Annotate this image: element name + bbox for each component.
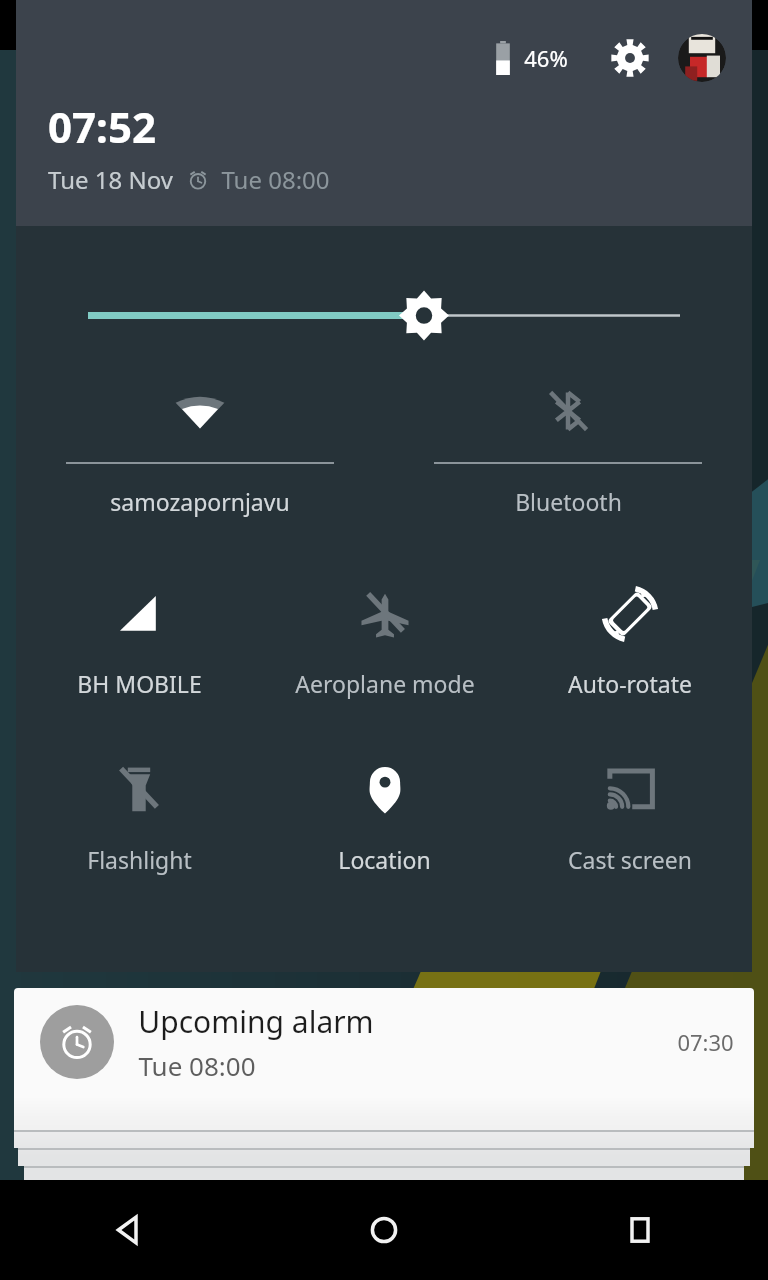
staticText: Aeroplane mode (295, 668, 475, 699)
staticText: Cast screen (568, 844, 692, 875)
staticText: Tue 08:00 (221, 163, 330, 196)
staticText: Upcoming alarm (138, 1001, 374, 1042)
button[interactable]: BH MOBILE (16, 586, 262, 699)
staticText: Auto-rotate (568, 668, 692, 699)
button[interactable]: Settings (606, 34, 654, 82)
staticText: samozapornjavu (110, 486, 290, 517)
button[interactable]: Home (256, 1180, 512, 1280)
button[interactable]: Recent apps (512, 1180, 768, 1280)
button[interactable]: samozapornjavu (16, 378, 384, 517)
staticText: 46% (524, 43, 568, 73)
button[interactable]: Location (262, 762, 507, 875)
button[interactable]: Aeroplane mode (262, 586, 507, 699)
button[interactable]: User profile (678, 34, 726, 82)
button[interactable]: Upcoming alarm (14, 988, 754, 1096)
staticText: Flashlight (87, 844, 192, 875)
staticText: Tue 08:00 (138, 1048, 256, 1083)
staticText: Bluetooth (515, 486, 622, 517)
button[interactable]: Bluetooth (384, 378, 752, 517)
staticText: BH MOBILE (77, 668, 202, 699)
button[interactable]: Brightness (16, 226, 752, 366)
staticText: Tue 18 Nov (48, 163, 173, 196)
button[interactable]: Auto-rotate (507, 586, 752, 699)
staticText: 07:30 (677, 1027, 734, 1057)
button[interactable]: Back (0, 1180, 256, 1280)
staticText: Location (338, 844, 431, 875)
button[interactable]: Cast screen (507, 762, 752, 875)
button[interactable]: Flashlight (16, 762, 262, 875)
staticText: 07:52 (48, 98, 156, 155)
